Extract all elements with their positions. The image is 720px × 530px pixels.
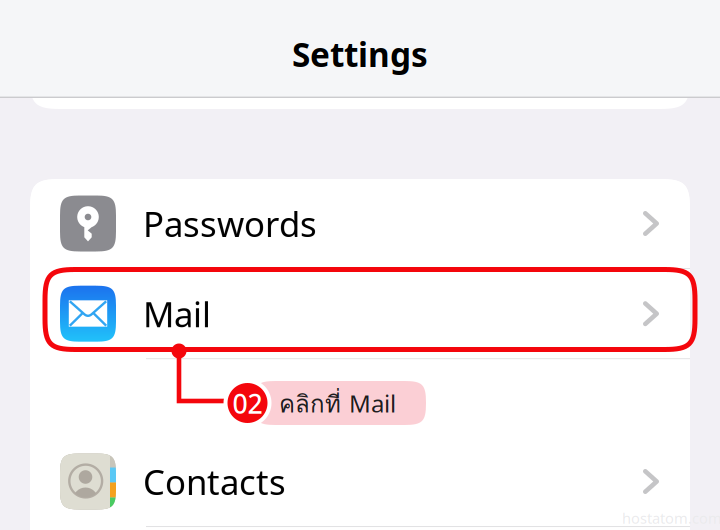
button[interactable]: Mail — [30, 269, 690, 358]
staticText: Passwords — [143, 200, 317, 246]
button[interactable]: Settings — [210, 24, 510, 84]
staticText: คลิกที่ Mail — [279, 385, 396, 423]
staticText: 02 — [232, 386, 262, 421]
staticText: Settings — [292, 32, 428, 76]
staticText: Contacts — [143, 458, 286, 504]
button[interactable]: Passwords — [30, 179, 690, 268]
staticText: hostatom.com — [622, 508, 720, 528]
staticText: Mail — [143, 291, 211, 337]
button[interactable]: Contacts — [30, 437, 690, 526]
